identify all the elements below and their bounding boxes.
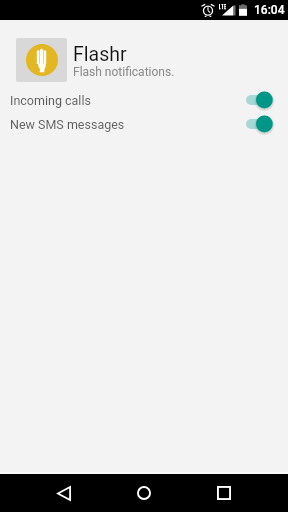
button[interactable]: Flashr: [0, 30, 288, 88]
staticText: New SMS messages: [10, 117, 125, 132]
button[interactable]: Incoming calls: [0, 88, 288, 112]
button[interactable]: Home: [122, 474, 166, 512]
button[interactable]: Recents: [202, 474, 246, 512]
button[interactable]: New SMS messages: [0, 112, 288, 136]
staticText: 16:04: [254, 3, 285, 17]
staticText: Incoming calls: [10, 93, 91, 108]
staticText: Flash notifications.: [73, 65, 175, 79]
button[interactable]: Back: [42, 474, 86, 512]
staticText: Flashr: [73, 43, 127, 66]
